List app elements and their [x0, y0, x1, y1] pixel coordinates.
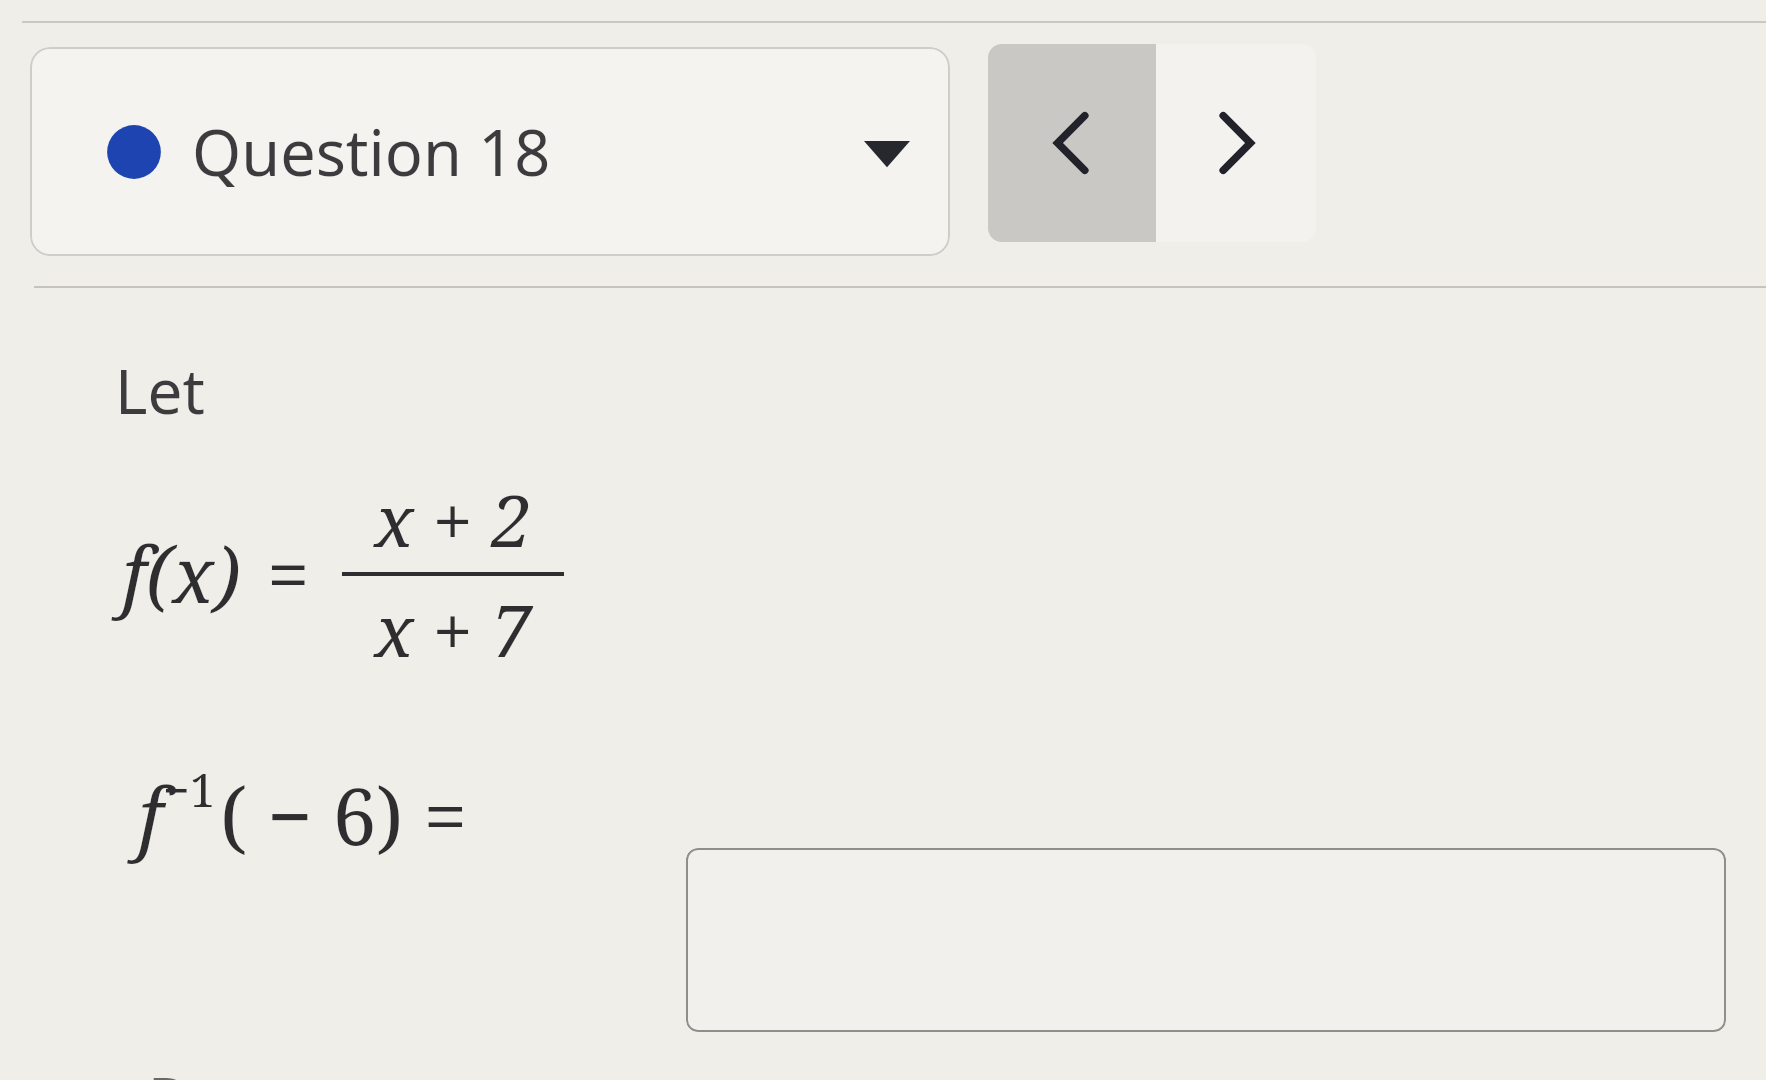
staticText: D: [148, 1058, 191, 1080]
button[interactable]: Answer input field: [686, 848, 1726, 1032]
staticText: Question 18: [192, 109, 551, 195]
staticText: −1: [163, 758, 216, 821]
staticText: ( − 6) =: [220, 762, 468, 868]
staticText: =: [267, 522, 310, 626]
staticText: f: [138, 762, 163, 868]
staticText: x + 2: [374, 470, 532, 568]
button[interactable]: Next question: [1156, 44, 1316, 242]
staticText: x + 7: [374, 580, 532, 678]
staticText: Let: [115, 348, 205, 432]
other: Open question list: [864, 135, 910, 169]
button[interactable]: Question 18: [30, 47, 950, 256]
staticText: f(x): [122, 522, 241, 626]
button[interactable]: Previous question: [988, 44, 1156, 242]
